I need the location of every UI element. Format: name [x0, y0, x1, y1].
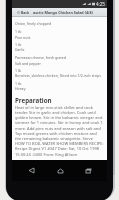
- staticText: HOW TO BOIL WATER SHOW MEMBERS RECIPE: M…: [15, 141, 104, 146]
- staticText: 1 tb: [15, 29, 104, 34]
- staticText: Salt and pepper: [15, 61, 104, 66]
- staticText: more. Add pine nuts and season with salt…: [15, 126, 104, 131]
- staticText: 4:25: [96, 1, 105, 7]
- staticText: Boneless, skinless chicken, Sliced into …: [15, 73, 104, 78]
- staticText: Back: [21, 10, 30, 15]
- button[interactable]: Navigate back: [17, 8, 112, 17]
- staticText: Pine nuts: [15, 35, 104, 40]
- staticText: golden brown. Stir in the balsamic vineg…: [15, 115, 104, 120]
- button[interactable]: Recent apps: [79, 160, 97, 181]
- staticText: Preparation: [15, 96, 52, 104]
- staticText: 1 tb: [15, 81, 104, 86]
- button[interactable]: Back: [22, 160, 40, 181]
- staticText: Top mixed greens with chicken mixture an…: [15, 131, 104, 136]
- staticText: Onion, finely chopped: [15, 21, 104, 26]
- staticText: Honey: [15, 86, 104, 91]
- staticText: Heat oil in large non-stick skillet and …: [15, 105, 104, 110]
- staticText: the remaining balsamic vinaigrette. Serv…: [15, 136, 104, 141]
- staticText: simmer for 1 minutes. Stir in honey and …: [15, 120, 104, 125]
- staticText: Parmesan cheese, fresh grated: [15, 55, 104, 60]
- staticText: Recipe Digest V1 #347 Date: Sat, 10 Oct …: [15, 146, 104, 151]
- staticText: tender. Stir in garlic and chicken. Cook…: [15, 110, 104, 115]
- staticText: 15:00:24 -0400 From: King Allison: [15, 152, 104, 157]
- button[interactable]: Home: [51, 160, 69, 181]
- staticText: Garlic: [15, 47, 104, 52]
- staticText: asctic Mango Chicken Salad (4/4): [33, 10, 93, 15]
- staticText: 1 lb: [15, 68, 104, 73]
- staticText: 1 tb: [15, 42, 104, 47]
